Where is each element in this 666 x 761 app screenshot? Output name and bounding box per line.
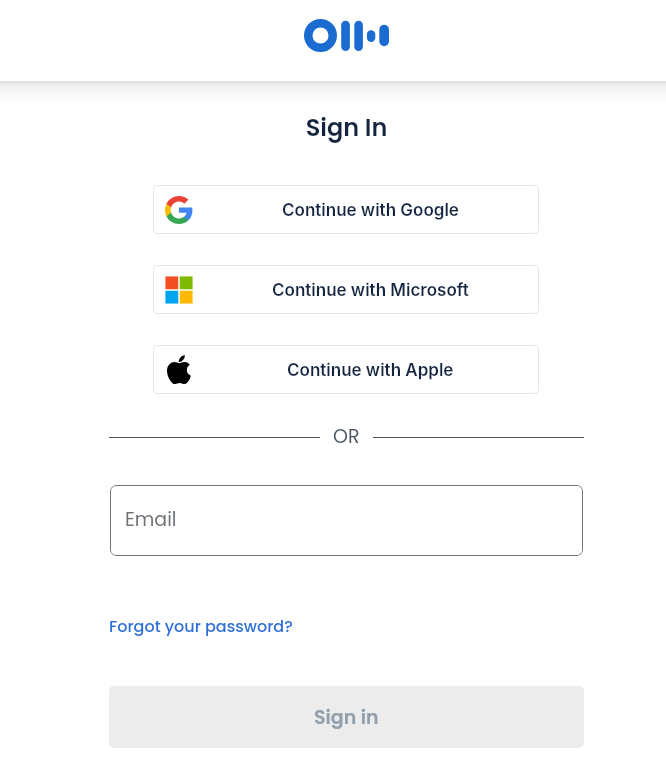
button[interactable]: Continue with Google xyxy=(153,185,539,234)
staticText: Continue with Google xyxy=(282,200,459,221)
staticText: Continue with Microsoft xyxy=(272,280,469,301)
button[interactable]: Sign in xyxy=(109,686,584,748)
staticText: OR xyxy=(333,423,360,450)
button[interactable]: Forgot your password? xyxy=(109,615,293,637)
staticText: Forgot your password? xyxy=(109,615,293,637)
button[interactable]: Continue with Microsoft xyxy=(153,265,539,314)
button[interactable]: Continue with Apple xyxy=(153,345,539,394)
staticText: Continue with Apple xyxy=(287,360,454,381)
staticText: Sign In xyxy=(109,111,584,145)
button[interactable]: Email xyxy=(110,485,583,556)
staticText: Sign in xyxy=(314,704,379,731)
staticText: Email xyxy=(125,506,177,533)
button[interactable]: Otter.ai home xyxy=(304,19,389,52)
